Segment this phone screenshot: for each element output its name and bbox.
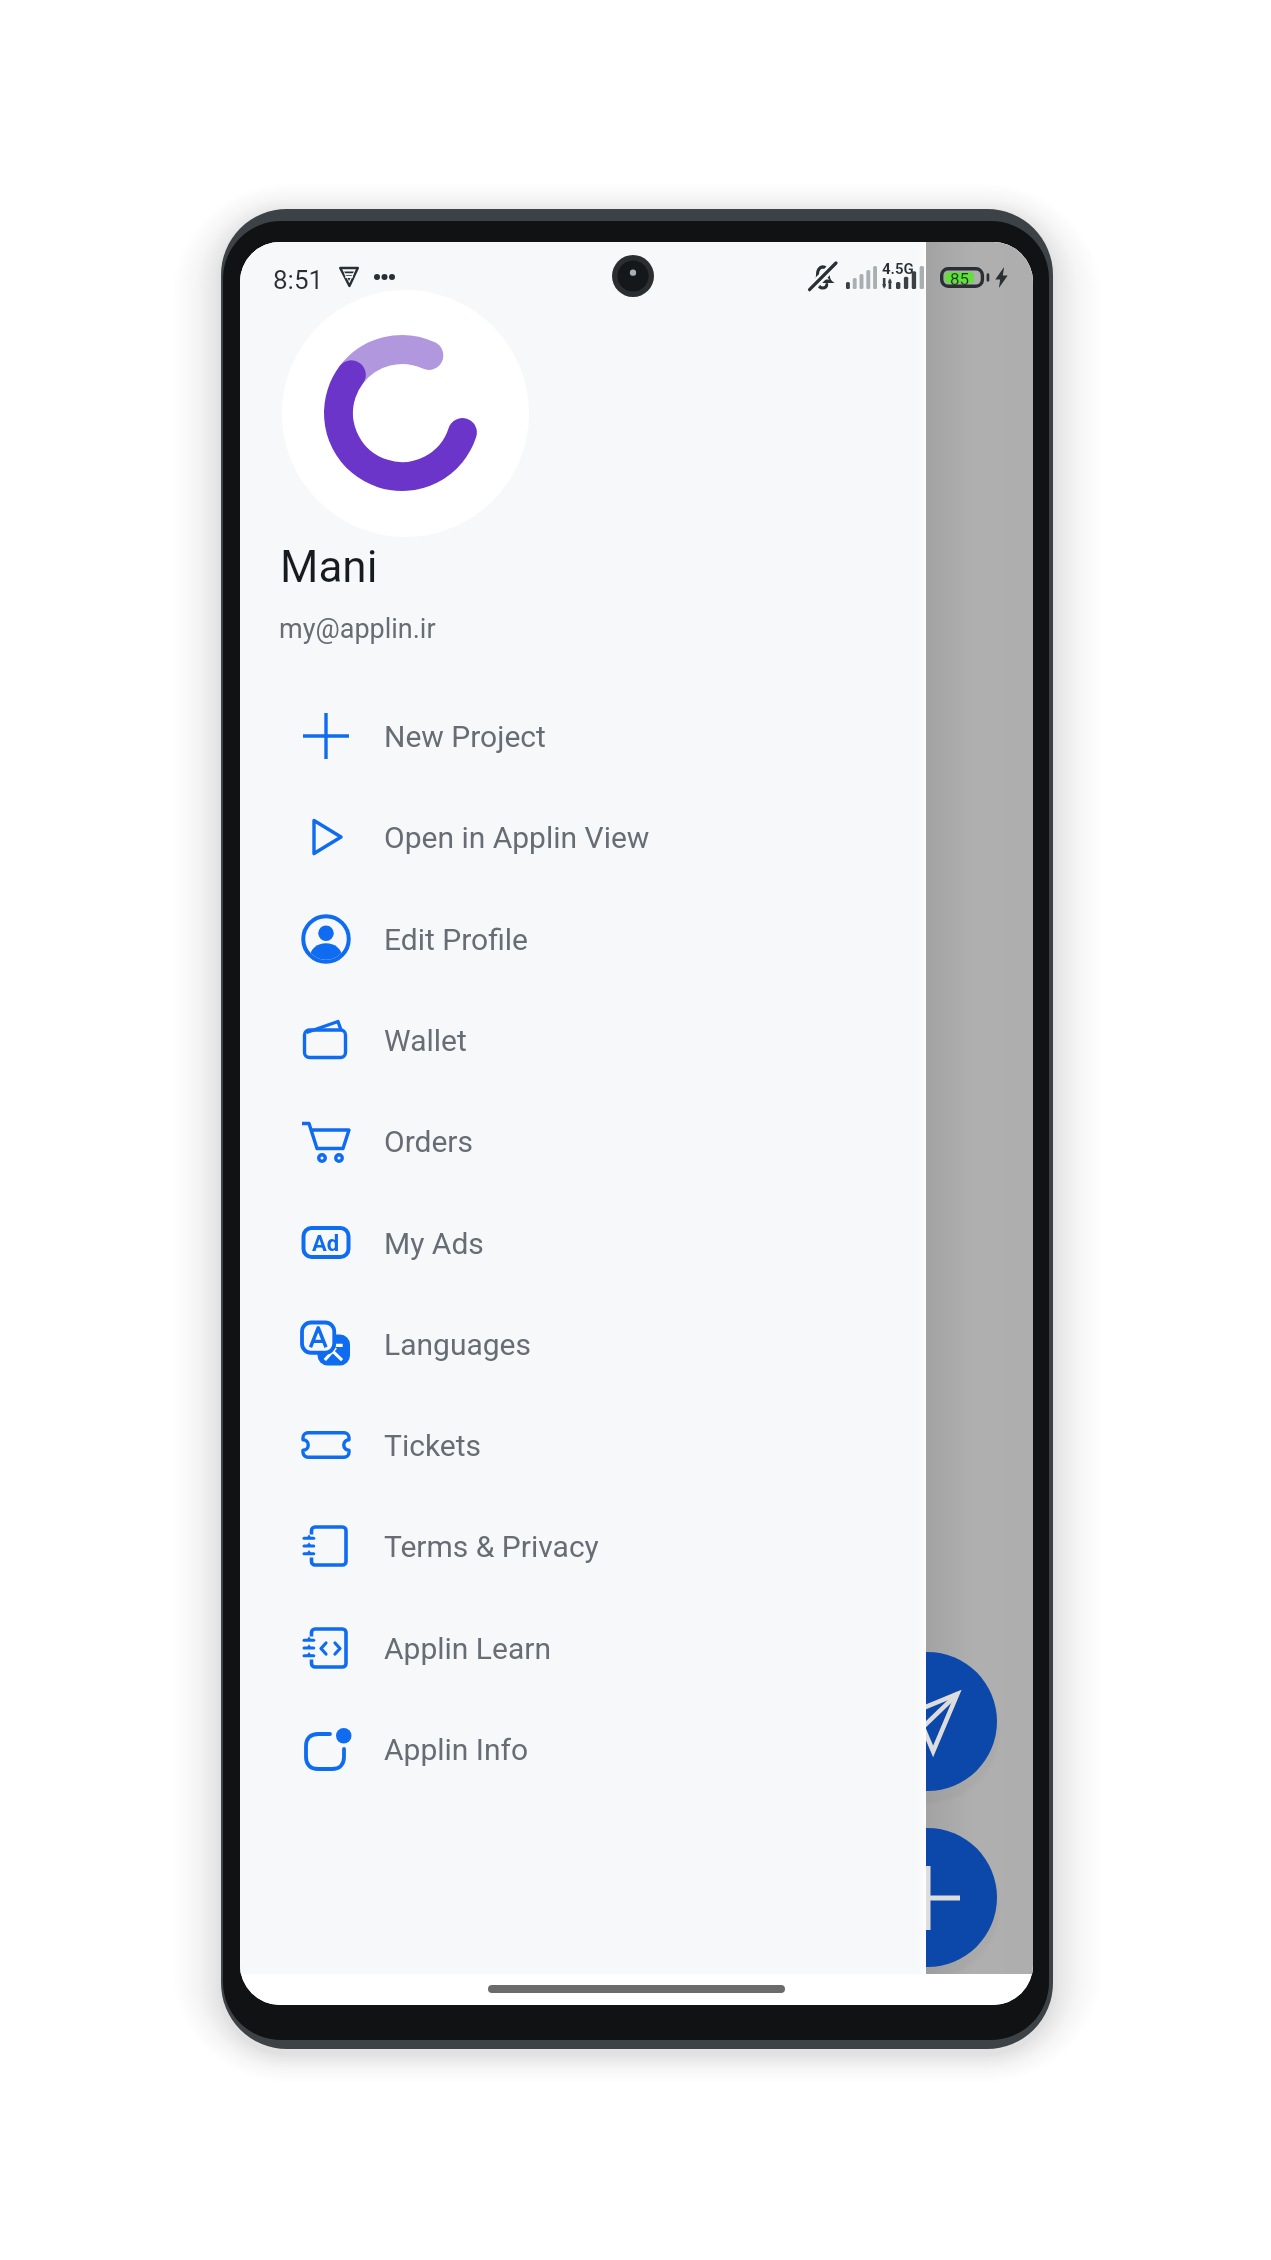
button[interactable]: Ad: [240, 1193, 926, 1293]
button[interactable]: Publish: [858, 1652, 997, 1791]
staticText: Languages: [384, 1327, 531, 1362]
button[interactable]: Edit Profile: [240, 889, 926, 989]
button[interactable]: Wallet: [240, 990, 926, 1090]
staticText: Applin Info: [384, 1732, 529, 1767]
button[interactable]: Languages: [240, 1294, 926, 1394]
staticText: 4.5G: [882, 260, 914, 278]
button[interactable]: Open in Applin View: [240, 787, 926, 887]
staticText: 8:51: [273, 265, 324, 295]
staticText: Tickets: [384, 1428, 482, 1463]
staticText: New Project: [384, 719, 546, 754]
button[interactable]: Applin Learn: [240, 1598, 926, 1698]
button[interactable]: New Project: [240, 686, 926, 786]
staticText: Applin Learn: [384, 1631, 551, 1666]
staticText: Open in Applin View: [384, 820, 650, 855]
staticText: 85: [950, 269, 970, 289]
staticText: my@applin.ir: [279, 613, 436, 645]
button[interactable]: Terms & Privacy: [240, 1496, 926, 1596]
button[interactable]: Applin Info: [240, 1699, 926, 1799]
staticText: Terms & Privacy: [384, 1529, 599, 1564]
button[interactable]: Tickets: [240, 1395, 926, 1495]
button[interactable]: Mani: [240, 242, 926, 662]
button[interactable]: Orders: [240, 1091, 926, 1191]
staticText: Orders: [384, 1124, 474, 1159]
staticText: Ad: [312, 1231, 340, 1257]
staticText: Mani: [280, 541, 378, 593]
staticText: Wallet: [384, 1023, 467, 1058]
staticText: Edit Profile: [384, 922, 528, 957]
staticText: My Ads: [384, 1226, 484, 1261]
button[interactable]: Add project: [858, 1828, 997, 1967]
